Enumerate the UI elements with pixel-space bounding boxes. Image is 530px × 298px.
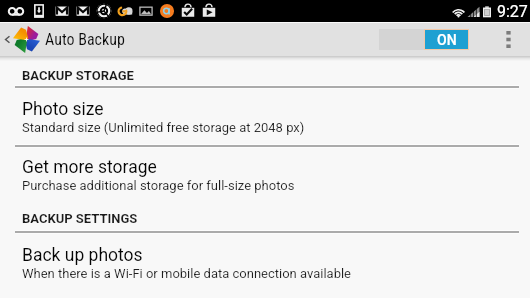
staticText: Standard size (Unlimited free storage at… — [22, 120, 305, 135]
button[interactable]: Get more storage — [0, 157, 530, 193]
staticText: ON — [437, 32, 457, 48]
button[interactable]: Navigate up, Auto Backup — [0, 22, 125, 56]
staticText: Photo size — [22, 99, 104, 120]
staticText: When there is a Wi-Fi or mobile data con… — [22, 266, 352, 281]
staticText: Back up photos — [22, 245, 143, 266]
staticText: Get more storage — [22, 157, 157, 178]
button[interactable]: More options — [495, 22, 521, 56]
button[interactable]: Photo size — [0, 99, 530, 135]
staticText: BACKUP SETTINGS — [22, 211, 138, 226]
button[interactable]: Back up photos — [0, 245, 530, 281]
staticText: 9:27 — [497, 2, 528, 21]
staticText: Purchase additional storage for full-siz… — [22, 178, 295, 193]
staticText: Auto Backup — [45, 30, 125, 49]
staticText: BACKUP STORAGE — [22, 68, 134, 83]
button[interactable]: ON — [379, 29, 469, 50]
